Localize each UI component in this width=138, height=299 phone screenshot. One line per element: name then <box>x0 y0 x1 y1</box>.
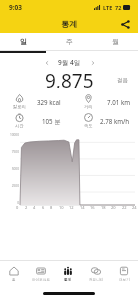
staticText: 7.01 km <box>107 98 130 106</box>
staticText: 20 <box>111 205 116 210</box>
button[interactable]: 시간 <box>0 111 69 130</box>
staticText: 105 분 <box>42 117 61 125</box>
staticText: 16 <box>90 205 95 210</box>
staticText: 5000 <box>4 167 19 171</box>
button[interactable]: 통계 <box>54 261 82 288</box>
button[interactable]: 커뮤니티 <box>82 261 110 288</box>
staticText: 7500 <box>4 150 19 154</box>
button[interactable]: 다음 날짜 <box>87 57 98 68</box>
button[interactable]: 더보기 <box>110 261 138 288</box>
staticText: 72 <box>115 4 122 11</box>
staticText: 0 <box>16 205 19 210</box>
button[interactable]: 마이포인트 <box>27 261 54 288</box>
staticText: 8 <box>50 205 53 210</box>
button[interactable]: 이전 날짜 <box>41 57 52 68</box>
staticText: 329 kcal <box>37 98 61 106</box>
staticText: 0 <box>4 201 19 205</box>
staticText: 통계 <box>61 19 77 29</box>
button[interactable]: 공유 <box>118 17 132 31</box>
staticText: 18 <box>101 205 106 210</box>
staticText: 6 <box>42 205 45 210</box>
staticText: 일 <box>20 37 27 46</box>
staticText: 칼로리 <box>13 104 26 109</box>
button[interactable]: 일 <box>0 33 46 50</box>
staticText: 속도 <box>84 123 93 128</box>
staticText: 2.78 km/h <box>100 117 130 125</box>
staticText: 9:03 <box>9 3 22 12</box>
staticText: 더보기 <box>119 278 130 283</box>
staticText: 월 <box>112 37 119 46</box>
staticText: 2 <box>25 205 28 210</box>
staticText: LTE <box>103 4 113 11</box>
staticText: 12 <box>69 205 74 210</box>
button[interactable]: 거리 <box>69 92 138 111</box>
staticText: 마이포인트 <box>32 278 50 283</box>
staticText: 9월 4일 <box>58 58 81 67</box>
staticText: 2500 <box>4 184 19 188</box>
staticText: 14 <box>80 205 85 210</box>
button[interactable]: 월 <box>92 33 138 50</box>
staticText: 통계 <box>64 278 72 283</box>
staticText: 거리 <box>84 104 93 109</box>
staticText: 홈 <box>12 278 16 283</box>
button[interactable]: 칼로리 <box>0 92 69 111</box>
staticText: 4 <box>33 205 36 210</box>
staticText: 시간 <box>15 123 24 128</box>
staticText: 10000 <box>4 133 19 137</box>
staticText: 커뮤니티 <box>89 278 104 283</box>
staticText: 24 <box>132 205 137 210</box>
button[interactable]: 홈 <box>0 261 27 288</box>
staticText: 주 <box>66 37 73 46</box>
button[interactable]: 주 <box>46 33 92 50</box>
staticText: 10 <box>59 205 64 210</box>
staticText: 22 <box>122 205 127 210</box>
button[interactable]: 속도 <box>69 111 138 130</box>
staticText: 9,875 <box>45 68 94 88</box>
staticText: 걸음 <box>117 77 128 84</box>
